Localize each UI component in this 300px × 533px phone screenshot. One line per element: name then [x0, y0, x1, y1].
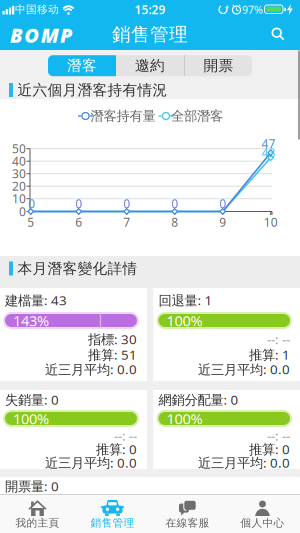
staticText: 我的主頁 [15, 516, 59, 529]
staticText: 銷售管理 [112, 23, 188, 46]
staticText: 網銷分配量: 0 [158, 391, 238, 408]
staticText: 100% [166, 409, 202, 428]
staticText: 中国移动 [15, 3, 59, 16]
staticText: 指標: 30 [88, 330, 137, 348]
staticText: 近三月平均: 0.0 [45, 454, 137, 471]
staticText: 9 [219, 214, 226, 230]
staticText: 43 [261, 144, 275, 160]
staticText: --: -- [267, 330, 290, 348]
staticText: 本月潛客變化詳情 [17, 259, 137, 277]
staticText: --: -- [267, 427, 290, 444]
staticText: 97% [242, 2, 263, 17]
staticText: 近三月平均: 0.0 [198, 454, 290, 471]
staticText: 47 [261, 135, 275, 151]
staticText: 100% [13, 409, 49, 428]
staticText: 開票 [203, 57, 233, 75]
button[interactable]: 邀約 [116, 55, 184, 76]
staticText: 30 [12, 166, 26, 182]
staticText: 10 [264, 214, 278, 230]
staticText: 邀約 [135, 57, 165, 75]
staticText: 0 [219, 195, 226, 211]
staticText: 0 [19, 203, 26, 219]
staticText: 10 [12, 191, 26, 207]
button[interactable]: 在線客服 [150, 494, 225, 533]
staticText: 7 [123, 214, 130, 230]
staticText: 全部潛客 [171, 108, 223, 124]
staticText: 50 [12, 141, 26, 157]
staticText: 100% [166, 311, 202, 330]
staticText: 銷售管理 [90, 516, 134, 529]
staticText: 6 [75, 214, 82, 230]
staticText: 近三月平均: 0.0 [45, 360, 137, 378]
staticText: 0 [171, 195, 178, 211]
staticText: 0 [28, 195, 35, 211]
staticText: 推算: 1 [249, 346, 290, 363]
staticText: 個人中心 [240, 516, 284, 529]
staticText: 推算: 0 [96, 440, 137, 458]
button[interactable]: 潛客 [48, 55, 116, 76]
staticText: 8 [171, 214, 178, 230]
staticText: 潛客持有量 [90, 108, 155, 124]
staticText: 開票量: 0 [5, 477, 59, 495]
staticText: --: -- [114, 427, 137, 444]
button[interactable]: 開票 [185, 55, 252, 76]
staticText: 0 [75, 195, 82, 211]
staticText: 40 [12, 153, 26, 169]
staticText: 0 [123, 195, 130, 211]
staticText: 15:29 [134, 1, 165, 17]
staticText: BOMP [10, 22, 72, 48]
button[interactable]: Search [270, 26, 286, 42]
button[interactable]: 我的主頁 [0, 494, 75, 533]
button[interactable]: 個人中心 [225, 494, 300, 533]
staticText: 在線客服 [165, 516, 209, 529]
staticText: 近六個月潛客持有情況 [17, 81, 167, 99]
staticText: 失銷量: 0 [5, 391, 59, 408]
staticText: 潛客 [67, 57, 97, 75]
staticText: 5 [27, 214, 34, 230]
staticText: 推算: 51 [88, 346, 137, 363]
staticText: 回退量: 1 [158, 291, 212, 309]
button[interactable]: 銷售管理 [75, 494, 150, 533]
staticText: 143% [13, 311, 49, 330]
staticText: 推算: 0 [249, 440, 290, 458]
staticText: 建檔量: 43 [5, 291, 67, 309]
staticText: 20 [12, 178, 26, 194]
staticText: 近三月平均: 0.0 [198, 360, 290, 378]
